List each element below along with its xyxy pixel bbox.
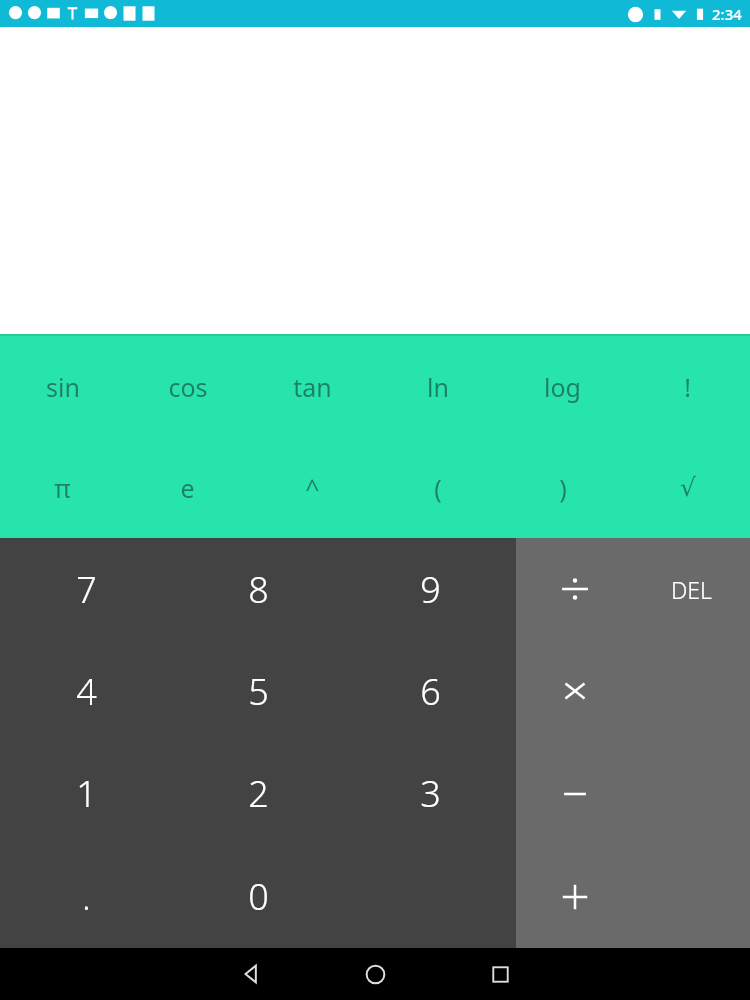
button[interactable]: 9 (344, 538, 516, 640)
button[interactable]: √ (625, 437, 750, 538)
staticText: 7 (76, 565, 97, 614)
staticText: e (180, 471, 195, 505)
staticText: ( (434, 471, 442, 505)
button[interactable]: Plus (516, 845, 633, 948)
button[interactable]: 7 (0, 538, 172, 640)
button[interactable]: ( (375, 437, 500, 538)
button[interactable]: ^ (250, 437, 375, 538)
staticText: 1 (76, 769, 97, 818)
button[interactable]: DEL (633, 538, 750, 640)
button[interactable]: Back (188, 948, 313, 1000)
staticText: 6 (420, 667, 441, 716)
staticText: 2:34 (712, 4, 742, 24)
button[interactable]: cos (125, 336, 250, 437)
button[interactable]: 1 (0, 742, 172, 845)
button[interactable]: Divide (516, 538, 633, 640)
staticText: ^ (305, 471, 320, 505)
button[interactable]: ) (500, 437, 625, 538)
button[interactable]: ! (625, 336, 750, 437)
button[interactable]: Multiply (516, 640, 633, 742)
staticText: 5 (248, 667, 269, 716)
staticText: 9 (420, 565, 441, 614)
button[interactable]: . (0, 845, 172, 948)
staticText: tan (293, 370, 332, 404)
button[interactable]: Minus (516, 742, 633, 845)
staticText: 8 (248, 565, 269, 614)
staticText: π (54, 471, 71, 505)
staticText: ! (684, 370, 691, 404)
button[interactable]: 8 (172, 538, 344, 640)
button[interactable]: sin (0, 336, 125, 437)
staticText: log (544, 370, 581, 404)
staticText: 2 (248, 769, 269, 818)
button[interactable]: 5 (172, 640, 344, 742)
button[interactable]: Recents (438, 948, 563, 1000)
button[interactable]: 3 (344, 742, 516, 845)
staticText: ) (559, 471, 567, 505)
staticText: DEL (671, 574, 712, 605)
button[interactable]: 6 (344, 640, 516, 742)
staticText: sin (46, 370, 80, 404)
button[interactable]: 0 (172, 845, 344, 948)
button[interactable]: ln (375, 336, 500, 437)
staticText: 4 (76, 667, 97, 716)
staticText: 0 (248, 872, 269, 921)
button[interactable]: 2 (172, 742, 344, 845)
button[interactable]: π (0, 437, 125, 538)
staticText: ln (427, 370, 449, 404)
staticText: cos (168, 370, 208, 404)
staticText: . (82, 874, 91, 920)
button[interactable]: 4 (0, 640, 172, 742)
staticText: √ (680, 473, 696, 502)
button[interactable]: tan (250, 336, 375, 437)
button[interactable]: e (125, 437, 250, 538)
button[interactable]: Home (313, 948, 438, 1000)
staticText: 3 (420, 769, 441, 818)
button[interactable]: log (500, 336, 625, 437)
